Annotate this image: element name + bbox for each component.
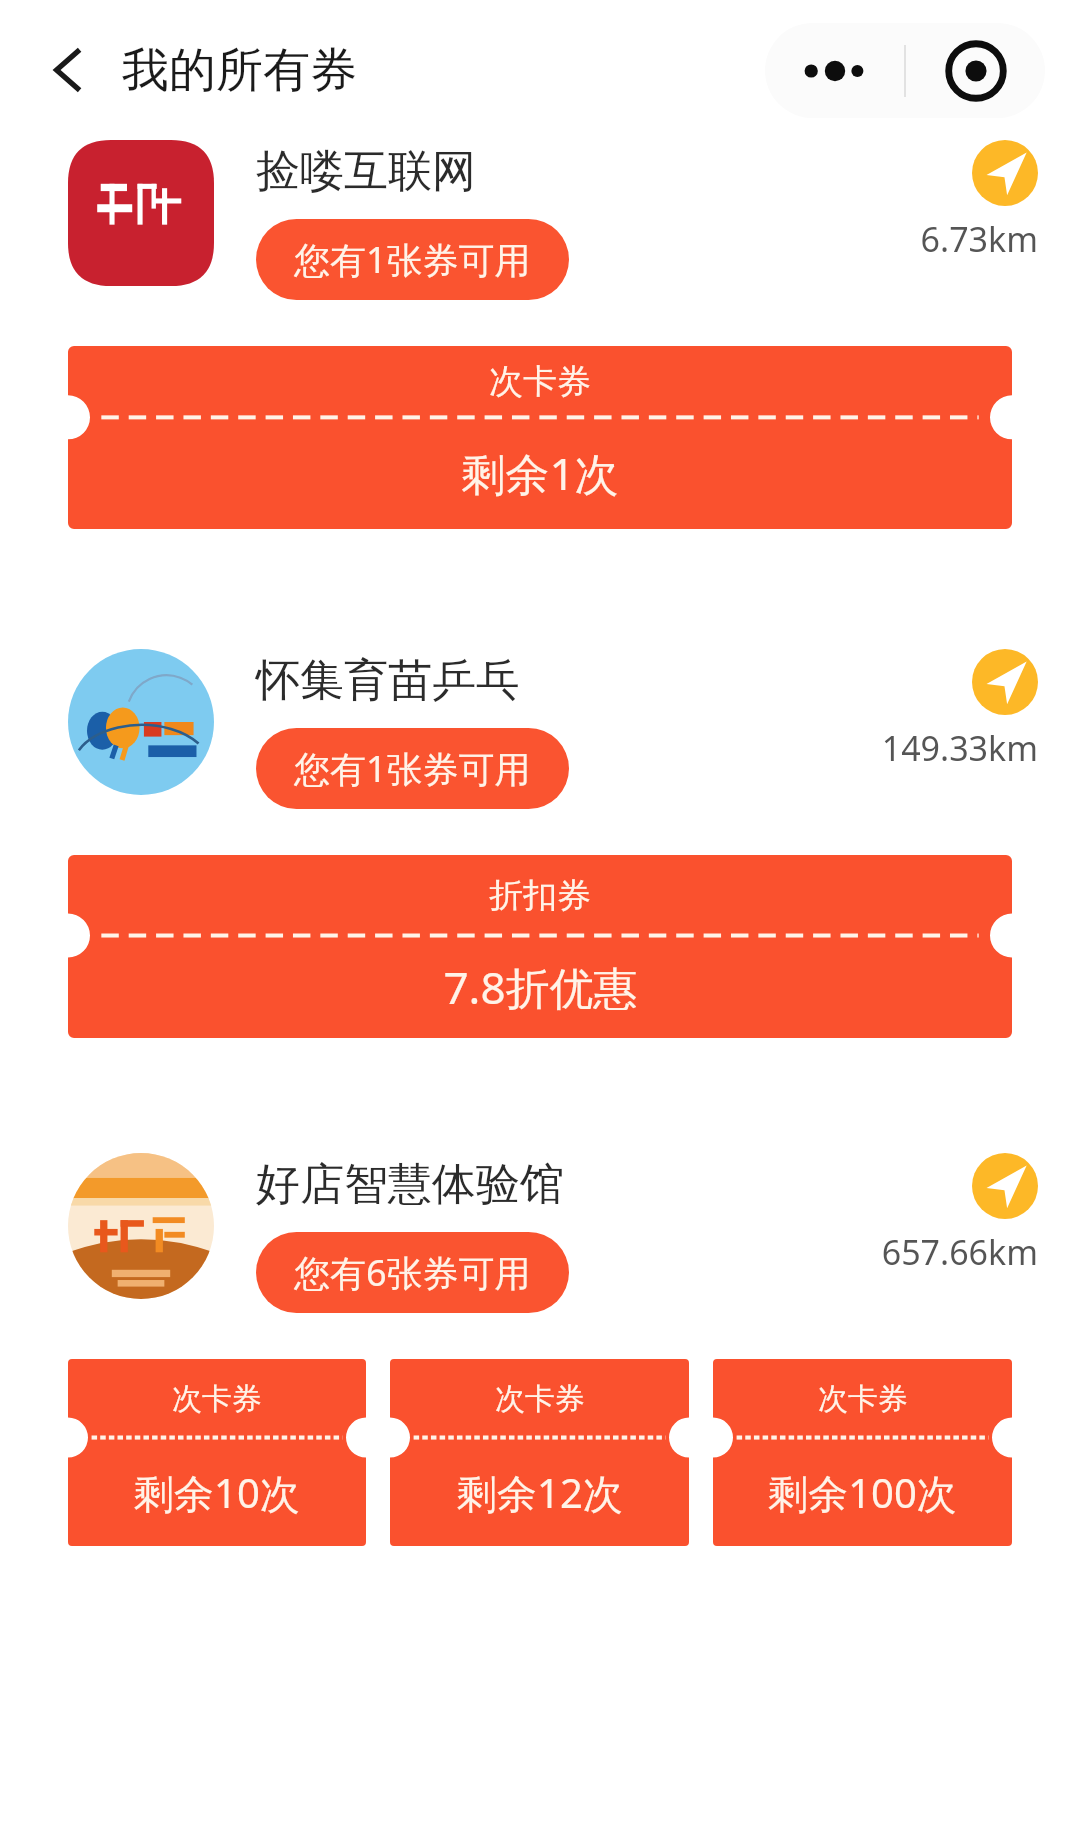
- button[interactable]: Navigate, 149.33km: [881, 649, 1038, 771]
- button[interactable]: 您有6张券可用: [256, 1232, 569, 1313]
- staticText: 剩余1次: [461, 443, 619, 503]
- staticText: 怀集育苗乒乓: [256, 653, 520, 708]
- staticText: 我的所有券: [122, 41, 357, 100]
- button[interactable]: 次卡券: [68, 346, 1012, 529]
- button[interactable]: 好店智慧体验馆: [68, 1153, 1038, 1313]
- button[interactable]: Back: [28, 28, 112, 112]
- staticText: 次卡券: [172, 1380, 262, 1418]
- button[interactable]: 怀集育苗乒乓: [68, 649, 1038, 809]
- staticText: 剩余10次: [134, 1465, 300, 1520]
- button[interactable]: Close: [906, 23, 1045, 118]
- staticText: 次卡券: [489, 360, 591, 403]
- staticText: 剩余12次: [457, 1465, 623, 1520]
- staticText: 好店智慧体验馆: [256, 1157, 564, 1212]
- staticText: 6.73km: [920, 216, 1038, 262]
- staticText: 折扣券: [489, 874, 591, 917]
- staticText: 657.66km: [881, 1229, 1038, 1275]
- button[interactable]: 捡喽互联网: [68, 140, 1038, 300]
- staticText: 次卡券: [818, 1380, 908, 1418]
- button[interactable]: More: [765, 23, 1045, 118]
- button[interactable]: 折扣券: [68, 855, 1012, 1038]
- staticText: 剩余100次: [768, 1465, 957, 1520]
- button[interactable]: Navigate, 6.73km: [920, 140, 1038, 262]
- staticText: 次卡券: [495, 1380, 585, 1418]
- button[interactable]: 您有1张券可用: [256, 728, 569, 809]
- button[interactable]: Navigate, 657.66km: [881, 1153, 1038, 1275]
- button[interactable]: 次卡券: [68, 1359, 366, 1546]
- staticText: 您有1张券可用: [294, 744, 531, 793]
- staticText: 您有6张券可用: [294, 1248, 531, 1297]
- staticText: 捡喽互联网: [256, 144, 476, 199]
- button[interactable]: 次卡券: [713, 1359, 1012, 1546]
- button[interactable]: More: [765, 23, 904, 118]
- staticText: 7.8折优惠: [443, 957, 638, 1017]
- staticText: 您有1张券可用: [294, 235, 531, 284]
- button[interactable]: 次卡券: [390, 1359, 689, 1546]
- button[interactable]: 您有1张券可用: [256, 219, 569, 300]
- staticText: 149.33km: [881, 725, 1038, 771]
